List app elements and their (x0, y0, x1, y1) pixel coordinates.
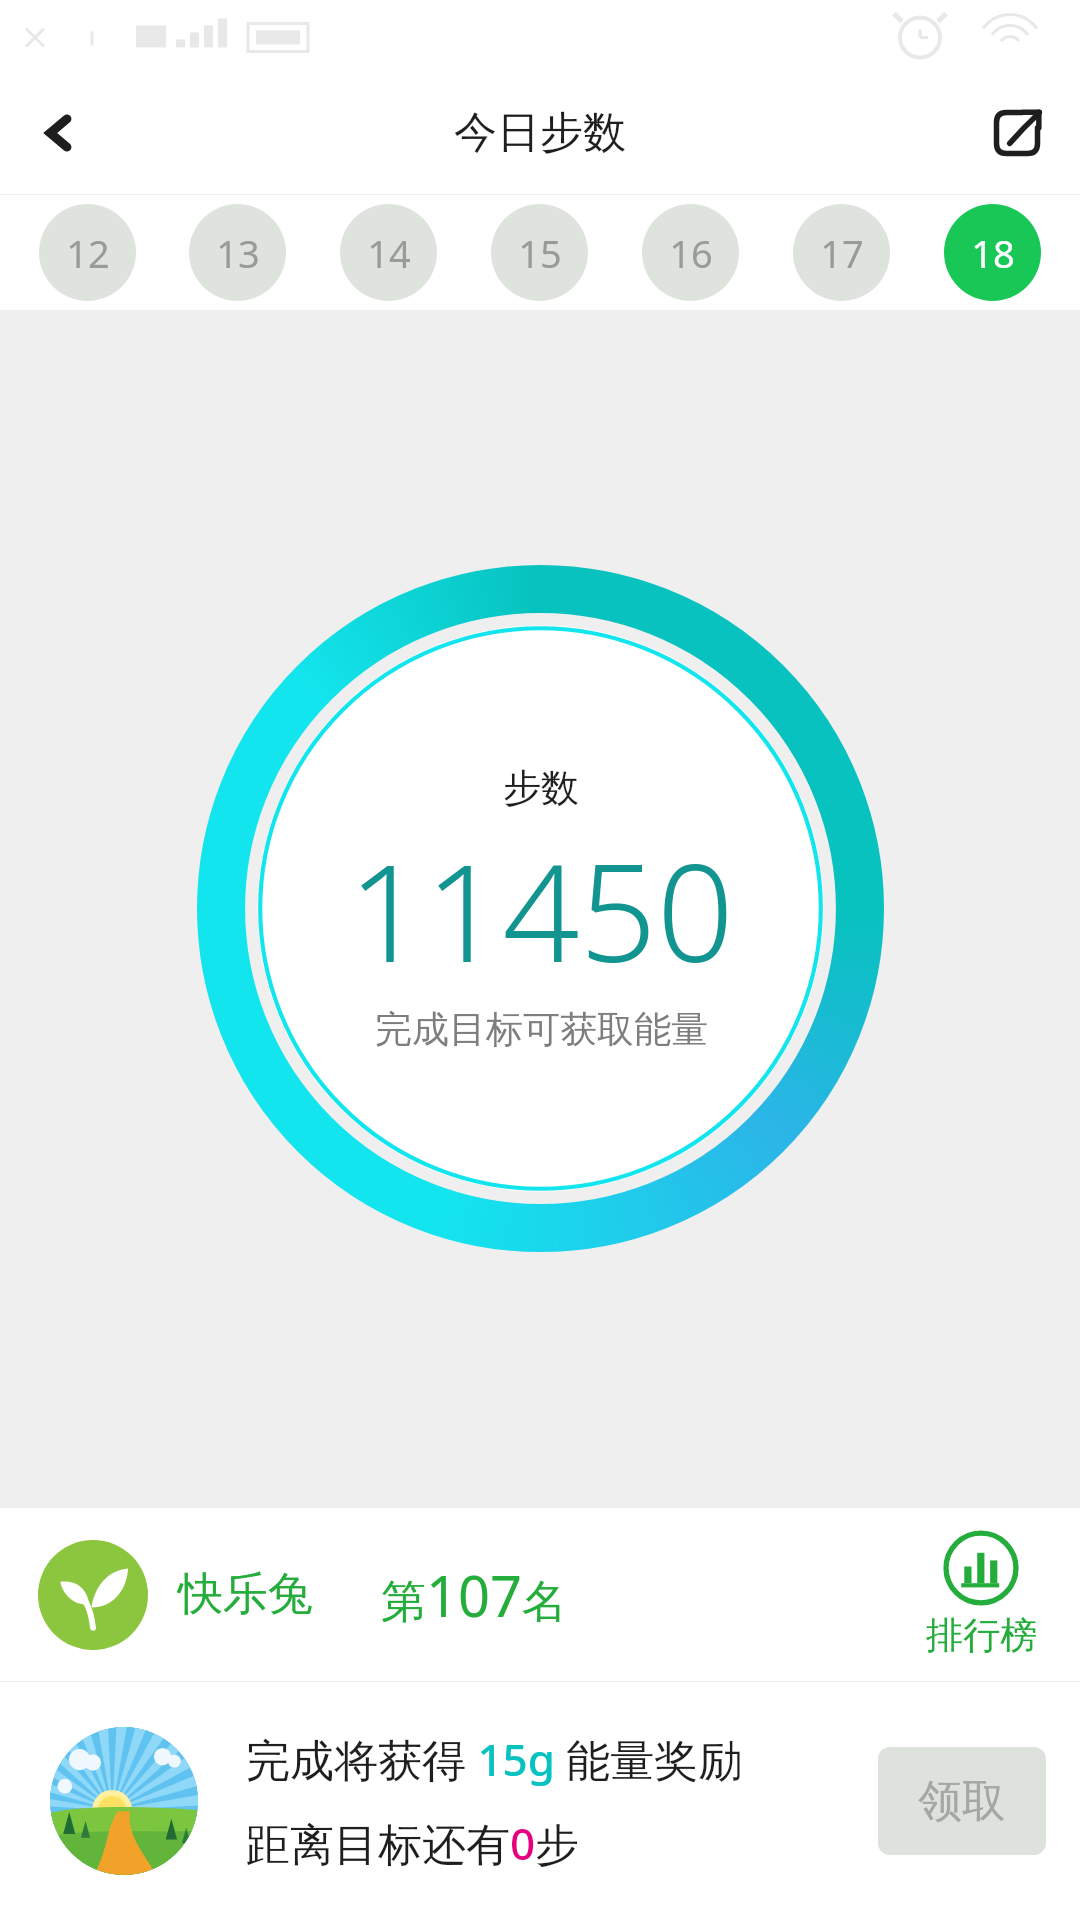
staticText: 领取 (918, 1774, 1006, 1829)
button[interactable]: 15 (464, 195, 615, 310)
staticText: 14 (367, 227, 411, 279)
button[interactable]: 13 (162, 195, 313, 310)
staticText: 今日步数 (454, 106, 626, 160)
button[interactable]: 16 (615, 195, 766, 310)
staticText: 18 (971, 227, 1015, 279)
staticText: 13 (216, 227, 260, 279)
button[interactable]: 12 (12, 195, 162, 310)
staticText: 步数 (503, 764, 579, 812)
button[interactable]: 18 (917, 195, 1068, 310)
button[interactable]: Back (16, 90, 102, 176)
staticText: 12 (66, 227, 110, 279)
staticText: 完成将获得 15g 能量奖励 (246, 1729, 743, 1789)
staticText: 16 (669, 227, 713, 279)
button[interactable]: 领取 (878, 1747, 1046, 1855)
staticText: 11450 (348, 818, 734, 1002)
staticText: 排行榜 (926, 1612, 1037, 1659)
button[interactable]: 排行榜 (896, 1508, 1066, 1681)
staticText: 完成目标可获取能量 (375, 1006, 708, 1053)
button[interactable]: 快乐兔 (0, 1508, 1080, 1681)
staticText: 15 (518, 227, 562, 279)
staticText: 第107名 (381, 1557, 568, 1633)
button[interactable]: Share (974, 90, 1060, 176)
staticText: 距离目标还有0步 (246, 1813, 580, 1873)
button[interactable]: 17 (766, 195, 917, 310)
staticText: 快乐兔 (178, 1566, 313, 1623)
button[interactable]: 14 (313, 195, 464, 310)
staticText: 17 (820, 227, 864, 279)
